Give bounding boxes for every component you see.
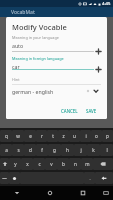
button[interactable]: a xyxy=(0,144,12,156)
staticText: b xyxy=(62,161,65,167)
staticText: Modify Vocable xyxy=(12,22,67,32)
button[interactable]: b xyxy=(57,158,69,170)
button[interactable]: n xyxy=(69,158,81,170)
staticText: o xyxy=(95,133,98,139)
button[interactable]: Symbols xyxy=(0,172,9,184)
staticText: f xyxy=(41,147,43,153)
button[interactable]: Add xyxy=(94,47,102,55)
staticText: auto xyxy=(12,42,24,49)
button[interactable]: s xyxy=(12,144,24,156)
staticText: g xyxy=(53,147,56,153)
staticText: Meaning in your language xyxy=(12,35,59,40)
button[interactable]: y xyxy=(9,158,21,170)
button[interactable]: d xyxy=(24,144,36,156)
button[interactable]: r xyxy=(36,130,47,142)
button[interactable]: k xyxy=(87,144,100,156)
staticText: d xyxy=(29,147,32,153)
button[interactable]: i xyxy=(80,130,91,142)
button[interactable]: h xyxy=(61,144,74,156)
staticText: m xyxy=(85,161,90,167)
button[interactable]: q xyxy=(0,130,12,142)
button[interactable]: . xyxy=(84,172,95,184)
button[interactable]: Add xyxy=(94,65,102,73)
button[interactable]: o xyxy=(91,130,102,142)
button[interactable]: j xyxy=(74,144,87,156)
button[interactable]: SAVE xyxy=(83,105,100,117)
button[interactable]: m xyxy=(81,158,93,170)
staticText: l xyxy=(106,147,108,153)
staticText: y xyxy=(14,161,17,167)
staticText: c xyxy=(38,161,41,167)
staticText: u xyxy=(73,133,76,139)
staticText: i xyxy=(85,133,87,139)
button[interactable]: g xyxy=(48,144,61,156)
button[interactable]: Expand xyxy=(92,87,100,95)
button[interactable]: Home xyxy=(33,186,66,200)
staticText: SAVE xyxy=(86,108,97,114)
button[interactable]: x xyxy=(21,158,33,170)
button[interactable]: u xyxy=(69,130,80,142)
staticText: 4:45 xyxy=(102,1,111,7)
button[interactable]: Emoji xyxy=(9,172,20,184)
staticText: v xyxy=(50,161,53,167)
button[interactable]: CANCEL xyxy=(58,105,81,117)
staticText: q xyxy=(5,133,8,139)
staticText: j xyxy=(80,147,82,153)
button[interactable]: Audio xyxy=(84,87,91,94)
staticText: a xyxy=(5,147,8,153)
staticText: k xyxy=(92,147,95,153)
button[interactable]: Enter xyxy=(95,172,113,184)
button[interactable]: c xyxy=(33,158,45,170)
staticText: . xyxy=(89,176,91,181)
button[interactable]: Back xyxy=(0,186,33,200)
button[interactable]: f xyxy=(36,144,48,156)
staticText: s xyxy=(17,147,20,153)
staticText: t xyxy=(52,133,54,139)
staticText: n xyxy=(74,161,77,167)
staticText: p xyxy=(106,133,109,139)
staticText: Meaning in foreign language xyxy=(12,56,64,61)
button[interactable]: e xyxy=(24,130,36,142)
button[interactable]: v xyxy=(45,158,57,170)
button[interactable]: p xyxy=(102,130,113,142)
staticText: Hint xyxy=(12,77,20,82)
staticText: CANCEL xyxy=(61,108,78,114)
staticText: h xyxy=(66,147,69,153)
staticText: car xyxy=(12,63,20,70)
staticText: z xyxy=(62,133,65,139)
button[interactable]: t xyxy=(47,130,58,142)
staticText: german - english xyxy=(12,88,54,95)
button[interactable]: Backspace xyxy=(93,158,113,170)
staticText: w xyxy=(16,133,20,139)
staticText: e xyxy=(29,133,32,139)
staticText: r xyxy=(41,133,43,139)
staticText: x xyxy=(26,161,29,167)
button[interactable]: z xyxy=(58,130,69,142)
button[interactable]: l xyxy=(100,144,113,156)
button[interactable]: Switch keyboard xyxy=(99,186,113,200)
button[interactable]: Recents xyxy=(66,186,99,200)
staticText: VocabMat xyxy=(11,9,35,16)
button[interactable]: Shift xyxy=(0,158,9,170)
button[interactable]: w xyxy=(12,130,24,142)
